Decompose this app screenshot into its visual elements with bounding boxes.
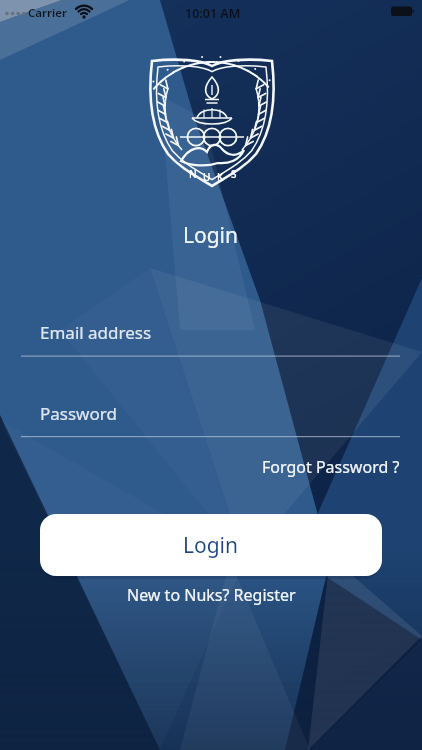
staticText: K	[217, 170, 224, 184]
staticText: N	[189, 167, 197, 181]
button[interactable]: Email address	[20, 312, 402, 357]
staticText: Password	[40, 402, 117, 425]
button[interactable]: Forgot Password ?	[250, 456, 400, 480]
staticText: 10:01 AM	[185, 5, 241, 22]
staticText: New to Nuks? Register	[127, 584, 296, 606]
staticText: Login	[183, 221, 239, 250]
staticText: U	[203, 170, 211, 184]
button[interactable]: Password	[20, 395, 402, 437]
staticText: S	[231, 167, 237, 181]
staticText: Forgot Password ?	[262, 456, 400, 478]
button[interactable]: Login	[40, 514, 382, 576]
staticText: Login	[183, 531, 239, 560]
button[interactable]: New to Nuks? Register	[127, 584, 296, 606]
staticText: Carrier	[28, 5, 68, 21]
staticText: Email address	[40, 321, 152, 344]
